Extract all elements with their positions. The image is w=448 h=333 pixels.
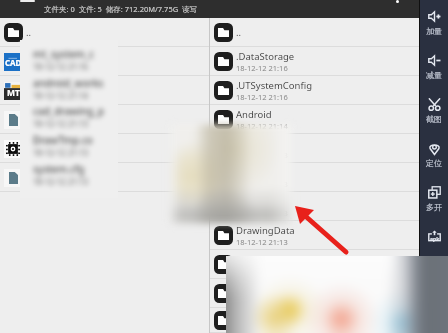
- button[interactable]: DrawingData: [210, 221, 448, 250]
- button[interactable]: Download: [210, 192, 448, 221]
- staticText: DrawTmp.conf file: [33, 133, 93, 147]
- button[interactable]: backups: [210, 134, 448, 163]
- staticText: Download: [236, 195, 282, 208]
- staticText: cad_drawing_project: [33, 104, 105, 118]
- staticText: 18-12-12 21:13: [236, 179, 288, 189]
- button[interactable]: [0, 134, 209, 163]
- button[interactable]: ..: [0, 18, 209, 47]
- button[interactable]: Fonts: [210, 250, 448, 279]
- staticText: 多开: [426, 202, 442, 212]
- staticText: 18-12-12 21:13: [236, 295, 288, 305]
- staticText: Music: [236, 309, 263, 322]
- staticText: system.cfg data: [33, 162, 91, 176]
- staticText: 18-12-12 21:13: [33, 176, 89, 187]
- staticText: MT: [7, 87, 20, 99]
- staticText: 18-12-12 21:13: [236, 150, 288, 160]
- button[interactable]: Install APK: [420, 224, 448, 268]
- button[interactable]: Screenshot: [420, 92, 448, 136]
- button[interactable]: Music: [210, 308, 448, 333]
- button[interactable]: Movies: [210, 279, 448, 308]
- staticText: ..: [236, 26, 242, 39]
- staticText: Fonts: [236, 253, 261, 266]
- staticText: 18-12-12 21:13: [236, 322, 288, 332]
- staticText: 18-12-12 21:14: [236, 121, 288, 131]
- staticText: 加量: [426, 26, 442, 36]
- button[interactable]: ..: [210, 18, 448, 47]
- staticText: 18-12-12 21:13: [236, 237, 288, 247]
- staticText: 18-12-12 21:16: [236, 63, 288, 73]
- staticText: ..: [26, 26, 32, 39]
- button[interactable]: .UTSystemConfig: [210, 76, 448, 105]
- staticText: 18-12-12 21:13: [236, 266, 288, 276]
- button[interactable]: Android: [210, 105, 448, 134]
- staticText: android_workspace sy: [33, 76, 105, 90]
- staticText: 18-12-12 21:13: [236, 208, 288, 218]
- button[interactable]: CAD: [0, 47, 209, 76]
- staticText: 减量: [426, 70, 442, 80]
- button[interactable]: Volume down: [420, 48, 448, 92]
- staticText: backups: [236, 137, 274, 150]
- button[interactable]: Volume up: [420, 4, 448, 48]
- staticText: 18-12-12 21:14: [33, 90, 89, 101]
- button[interactable]: [0, 105, 209, 134]
- staticText: DCIM: [236, 166, 261, 179]
- staticText: 文件夹: 0 文件: 5 储存: 712.20M/7.75G 读写: [44, 4, 198, 14]
- button[interactable]: Multi window: [420, 180, 448, 224]
- button[interactable]: .DataStorage: [210, 47, 448, 76]
- button[interactable]: Locate: [420, 136, 448, 180]
- staticText: 截图: [426, 114, 442, 124]
- button[interactable]: MT: [0, 76, 209, 105]
- staticText: Movies: [236, 282, 268, 295]
- staticText: Android: [236, 108, 272, 121]
- staticText: mt_system_cfg.dat: [33, 47, 96, 61]
- staticText: DrawingData: [236, 224, 295, 237]
- staticText: 定位: [426, 158, 442, 168]
- staticText: 18-12-12 21:13: [33, 118, 89, 129]
- button[interactable]: DCIM: [210, 163, 448, 192]
- staticText: 18-12-12 21:16: [236, 92, 288, 102]
- staticText: apk: [430, 236, 440, 243]
- staticText: .UTSystemConfig: [236, 79, 313, 92]
- button[interactable]: [0, 163, 209, 192]
- staticText: 18-12-12 21:13: [33, 147, 89, 158]
- staticText: 18-12-12 21:16: [33, 61, 89, 72]
- staticText: CAD: [5, 58, 22, 69]
- staticText: .DataStorage: [236, 50, 295, 63]
